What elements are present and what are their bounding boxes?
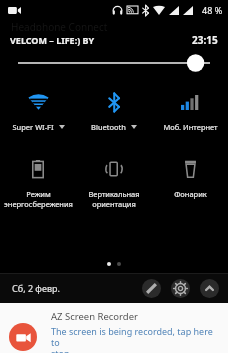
button[interactable]: Settings [171,279,190,298]
staticText: Bluetooth [91,122,126,132]
button[interactable]: Flashlight [152,156,228,201]
staticText: 23:15 [192,33,218,47]
staticText: Фонарик [174,189,207,199]
button[interactable]: Bluetooth [76,89,152,134]
button[interactable]: Battery saver [0,156,76,211]
button[interactable]: AZ Screen Recorder [0,303,228,353]
button[interactable] [0,48,228,78]
button[interactable]: Portrait orientation [76,156,152,211]
staticText: VELCOM – LIFE:) BY [10,34,95,46]
staticText: 48 % [202,4,223,16]
button[interactable]: Mobile data [152,89,228,134]
staticText: Режим энергосбережения [4,189,73,209]
staticText: Super WI-FI [12,122,54,132]
staticText: Моб. Интернет [163,122,218,132]
button[interactable]: Super WI-FI [0,89,76,134]
staticText: Вертикальная ориентация [88,189,140,209]
button[interactable]: Collapse [200,279,219,298]
staticText: AZ Screen Recorder [51,310,138,323]
staticText: Headphone Connect [11,20,108,31]
button[interactable]: Edit [142,279,161,298]
staticText: The screen is being recorded, tap here t… [51,325,220,353]
staticText: Сб, 2 февр. [12,282,60,294]
